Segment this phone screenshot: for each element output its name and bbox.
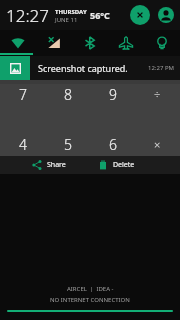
button[interactable]: Delete xyxy=(98,156,135,174)
button[interactable] xyxy=(7,310,173,312)
staticText: × xyxy=(154,137,161,152)
staticText: Delete xyxy=(113,160,135,170)
staticText: ÷ xyxy=(154,87,161,102)
button[interactable]: Share xyxy=(32,156,66,174)
staticText: 4 xyxy=(19,135,27,154)
staticText: THURSDAY xyxy=(55,8,87,16)
staticText: NO INTERNET CONNECTION xyxy=(50,296,130,304)
button[interactable]: Flashlight xyxy=(144,30,180,56)
staticText: JUNE 11 xyxy=(55,16,78,24)
button[interactable]: Mobile data xyxy=(36,30,72,56)
staticText: 8 xyxy=(64,85,72,104)
staticText: 12:27 xyxy=(6,4,49,27)
button[interactable]: Screenshot captured. xyxy=(0,56,180,80)
button[interactable]: Account xyxy=(158,7,174,23)
staticText: 9 xyxy=(109,85,117,104)
button[interactable]: Bluetooth xyxy=(72,30,108,56)
button[interactable]: Wi-Fi xyxy=(0,30,36,56)
staticText: 5 xyxy=(64,135,72,154)
staticText: Screenshot captured. xyxy=(38,62,128,74)
button[interactable]: Close xyxy=(130,5,150,25)
staticText: 7 xyxy=(19,85,27,104)
staticText: 12:27 PM xyxy=(148,64,174,72)
staticText: 56°C xyxy=(90,9,110,21)
staticText: AIRCEL | IDEA - xyxy=(67,285,114,293)
button[interactable]: Airplane mode xyxy=(108,30,144,56)
button[interactable]: 7 xyxy=(0,80,180,156)
staticText: Share xyxy=(47,160,66,170)
staticText: 6 xyxy=(109,135,117,154)
